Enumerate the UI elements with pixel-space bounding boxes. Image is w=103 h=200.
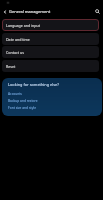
staticText: Reset (6, 64, 16, 69)
staticText: Date and time (6, 37, 30, 42)
staticText: Backup and restore (8, 99, 38, 103)
button[interactable]: Reset (2, 60, 99, 72)
staticText: Looking for something else? (8, 82, 59, 87)
staticText: Contact us (6, 50, 24, 55)
button[interactable]: Font size and style (2, 104, 102, 112)
staticText: Accounts (8, 92, 22, 96)
staticText: Language and input (6, 23, 40, 28)
button[interactable]: Accounts (2, 90, 102, 98)
button[interactable]: Navigate up (0, 5, 9, 18)
staticText: Font size and style (8, 106, 37, 110)
button[interactable]: Date and time (2, 33, 99, 45)
button[interactable]: Contact us (2, 46, 99, 58)
staticText: General management (9, 9, 51, 14)
button[interactable]: Backup and restore (2, 97, 102, 105)
button[interactable]: Language and input (2, 19, 99, 31)
button[interactable]: Search (91, 5, 103, 18)
